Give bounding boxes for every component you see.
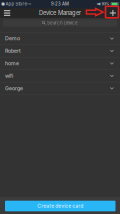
button[interactable]: Search Device	[3, 19, 117, 26]
staticText: wifi	[5, 73, 13, 79]
staticText: Create device card	[37, 203, 83, 209]
staticText: home	[5, 60, 19, 66]
button[interactable]: wifi	[0, 70, 120, 82]
staticText: George	[5, 85, 23, 91]
button[interactable]: home	[0, 57, 120, 70]
button[interactable]: Demo	[0, 32, 120, 45]
button[interactable]: Robert	[0, 45, 120, 57]
staticText: Robert	[5, 48, 21, 54]
staticText: 93%	[102, 2, 110, 6]
button[interactable]: Menu	[1, 8, 14, 18]
staticText: Demo	[5, 35, 20, 42]
button[interactable]: George	[0, 82, 120, 95]
staticText: App Store	[5, 1, 26, 7]
button[interactable]: Add device	[106, 8, 119, 18]
staticText: Device Manager	[39, 9, 81, 16]
staticText: 9:23 AM	[51, 1, 69, 7]
staticText: Search Device	[47, 20, 78, 26]
button[interactable]: Create device card	[5, 201, 115, 211]
